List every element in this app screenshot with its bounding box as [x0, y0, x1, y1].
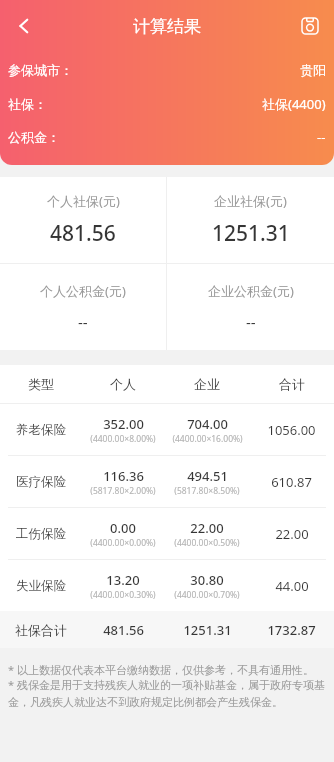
staticText: 企业 [194, 376, 220, 392]
staticText: 类型 [28, 376, 54, 392]
staticText: 企业社保(元) [214, 192, 287, 210]
staticText: (4400.00×8.00%) [90, 433, 156, 445]
staticText: (5817.80×8.50%) [174, 485, 240, 497]
staticText: -- [246, 312, 256, 332]
staticText: * 残保金是用于支持残疾人就业的一项补贴基金，属于政府专项基金，凡残疾人就业达不… [8, 677, 326, 709]
staticText: 44.00 [275, 577, 309, 595]
staticText: 社保合计 [15, 622, 67, 638]
staticText: 1732.87 [267, 621, 316, 639]
staticText: 1251.31 [183, 621, 232, 639]
staticText: 22.00 [275, 525, 309, 543]
staticText: 494.51 [187, 467, 228, 485]
staticText: (4400.00×0.30%) [90, 589, 156, 601]
staticText: 失业保险 [16, 578, 66, 594]
staticText: (4400.00×16.00%) [172, 433, 243, 445]
staticText: 0.00 [110, 519, 136, 537]
staticText: 养老保险 [16, 422, 66, 438]
staticText: 22.00 [190, 519, 224, 537]
staticText: 1056.00 [267, 421, 316, 439]
button[interactable]: Screenshot [288, 4, 332, 48]
staticText: 合计 [279, 376, 305, 392]
staticText: -- [317, 128, 326, 146]
staticText: 1251.31 [212, 219, 290, 248]
staticText: (5817.80×2.00%) [90, 485, 156, 497]
staticText: 公积金： [8, 129, 60, 145]
staticText: (4400.00×0.70%) [174, 589, 240, 601]
staticText: 个人 [110, 376, 136, 392]
staticText: -- [78, 312, 88, 332]
staticText: 参保城市： [8, 62, 73, 78]
staticText: 30.80 [190, 571, 224, 589]
staticText: 116.36 [103, 467, 144, 485]
staticText: 社保： [8, 96, 47, 112]
staticText: 481.56 [50, 219, 116, 248]
staticText: 个人社保(元) [47, 192, 120, 210]
button[interactable]: Back [2, 4, 46, 48]
staticText: 704.00 [187, 415, 228, 433]
staticText: 工伤保险 [16, 526, 66, 542]
staticText: 352.00 [103, 415, 144, 433]
staticText: 社保(4400) [262, 95, 326, 113]
staticText: * 以上数据仅代表本平台缴纳数据，仅供参考，不具有通用性。 [8, 662, 314, 677]
staticText: (4400.00×0.50%) [174, 537, 240, 549]
staticText: 481.56 [103, 621, 144, 639]
staticText: 医疗保险 [16, 474, 66, 490]
staticText: 个人公积金(元) [40, 282, 126, 300]
staticText: 计算结果 [133, 16, 201, 37]
staticText: 企业公积金(元) [208, 282, 294, 300]
staticText: (4400.00×0.00%) [90, 537, 156, 549]
staticText: 610.87 [271, 473, 312, 491]
staticText: 13.20 [106, 571, 140, 589]
staticText: 贵阳 [300, 62, 326, 78]
